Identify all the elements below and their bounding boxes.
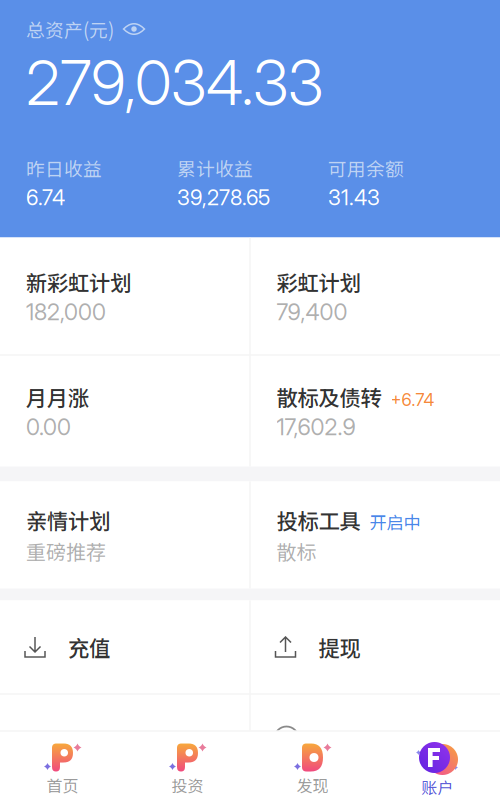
- staticText: 亲情计划: [26, 505, 110, 535]
- button[interactable]: 充值: [0, 600, 249, 693]
- button[interactable]: 彩虹计划: [250, 237, 500, 354]
- button[interactable]: 发现: [250, 731, 375, 797]
- staticText: 散标: [276, 536, 316, 565]
- staticText: 总资产(元): [26, 15, 114, 42]
- button[interactable]: 提现: [250, 600, 500, 693]
- staticText: 账户: [421, 775, 453, 797]
- staticText: 可用余额: [328, 155, 404, 182]
- button[interactable]: 散标及债转: [250, 355, 500, 466]
- staticText: 0.00: [26, 413, 71, 441]
- staticText: 6.74: [26, 185, 65, 210]
- staticText: 182,000: [26, 298, 106, 326]
- staticText: 279,034.33: [26, 45, 323, 120]
- button[interactable]: 月月涨: [0, 355, 249, 466]
- staticText: 开启中: [369, 509, 420, 534]
- staticText: 投资: [171, 773, 203, 797]
- staticText: 彩虹计划: [276, 266, 360, 297]
- staticText: 39,278.65: [177, 185, 270, 210]
- button[interactable]: 亲情计划: [0, 481, 249, 588]
- button[interactable]: 新彩虹计划: [0, 237, 249, 354]
- staticText: 31.43: [328, 185, 380, 210]
- staticText: 17,602.9: [276, 413, 355, 441]
- button[interactable]: 总资产(元): [26, 0, 145, 44]
- staticText: 新彩虹计划: [26, 266, 131, 297]
- button[interactable]: 投资: [125, 731, 250, 797]
- staticText: 重磅推荐: [26, 536, 106, 565]
- staticText: 充值: [68, 632, 110, 662]
- button[interactable]: 账户: [375, 731, 500, 797]
- staticText: 首页: [46, 773, 78, 797]
- staticText: 提现: [318, 632, 360, 662]
- staticText: 投标工具: [276, 505, 360, 535]
- button[interactable]: 投标工具: [250, 481, 500, 588]
- button[interactable]: 交易记录: [250, 694, 500, 730]
- staticText: 累计收益: [177, 155, 253, 182]
- staticText: 昨日收益: [26, 155, 102, 182]
- staticText: 发现: [296, 773, 328, 797]
- staticText: 月月涨: [26, 381, 89, 412]
- staticText: +6.74: [390, 389, 434, 410]
- staticText: 散标及债转: [276, 381, 381, 412]
- button[interactable]: 首页: [0, 731, 125, 797]
- staticText: 79,400: [276, 298, 347, 326]
